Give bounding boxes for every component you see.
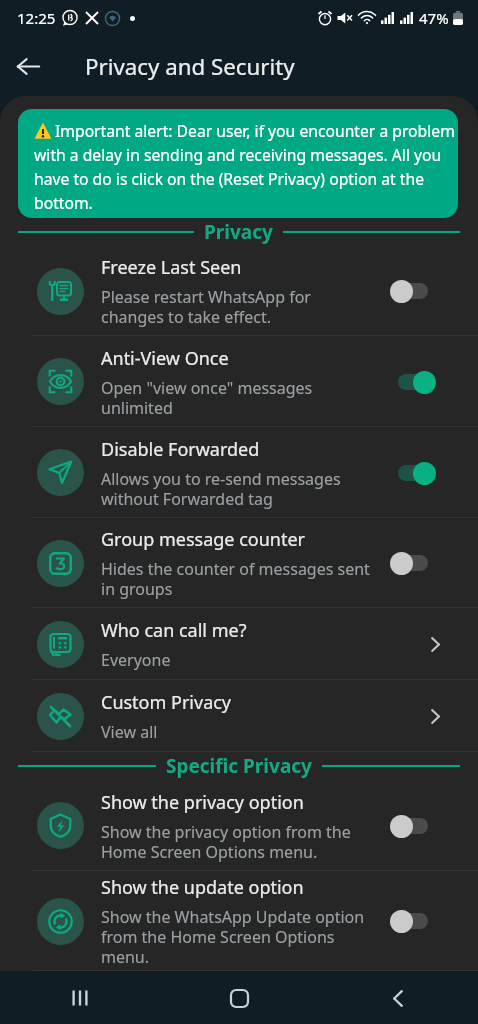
staticText: View all <box>101 723 158 743</box>
staticText: Who can call me? <box>101 617 247 643</box>
staticText: Freeze Last Seen <box>101 254 242 280</box>
button[interactable]: Switch off <box>390 907 436 935</box>
staticText: Please restart WhatsApp for changes to t… <box>101 288 311 328</box>
button[interactable]: Anti-View Once <box>0 336 478 427</box>
staticText: Hides the counter of messages sent in gr… <box>101 560 370 600</box>
staticText: Disable Forwarded <box>101 436 260 462</box>
staticText: Everyone <box>101 651 171 671</box>
button[interactable]: Switch off <box>390 277 436 305</box>
staticText: Anti-View Once <box>101 345 229 371</box>
staticText: Privacy and Security <box>85 51 295 81</box>
button[interactable]: Back <box>374 974 422 1022</box>
staticText: Show the privacy option <box>101 789 304 815</box>
button[interactable]: Who can call me? <box>0 608 478 680</box>
button[interactable]: Freeze Last Seen <box>0 246 478 336</box>
button[interactable]: Custom Privacy <box>0 680 478 752</box>
staticText: 12:25 <box>17 8 56 28</box>
button[interactable]: Home <box>215 974 263 1022</box>
staticText: Specific Privacy <box>166 753 312 779</box>
button[interactable]: Switch off <box>390 812 436 840</box>
staticText: Show the update option <box>101 874 304 900</box>
staticText: Allows you to re-send messages without F… <box>101 470 341 510</box>
staticText: bottom. <box>34 190 93 214</box>
button[interactable]: Disable Forwarded <box>0 427 478 518</box>
button[interactable]: Switch on <box>390 368 436 396</box>
staticText: Show the privacy option from the Home Sc… <box>101 823 351 863</box>
staticText: Show the WhatsApp Update option from the… <box>101 908 365 968</box>
button[interactable]: Show the privacy option <box>0 780 478 871</box>
staticText: 47% <box>419 8 449 28</box>
staticText: Open "view once" messages unlimited <box>101 379 313 419</box>
button[interactable]: Switch on <box>390 459 436 487</box>
button[interactable]: Show the update option <box>0 871 478 971</box>
staticText: with a delay in sending and receiving me… <box>34 142 442 166</box>
button[interactable]: Back <box>8 46 48 86</box>
button[interactable]: Recent apps <box>56 974 104 1022</box>
staticText: Custom Privacy <box>101 689 232 715</box>
button[interactable]: Group message counter <box>0 518 478 608</box>
staticText: Group message counter <box>101 526 306 552</box>
staticText: Important alert: Dear user, if you encou… <box>55 118 455 142</box>
staticText: have to do is click on the (Reset Privac… <box>34 166 425 190</box>
button[interactable]: Switch off <box>390 549 436 577</box>
staticText: Privacy <box>204 219 273 245</box>
